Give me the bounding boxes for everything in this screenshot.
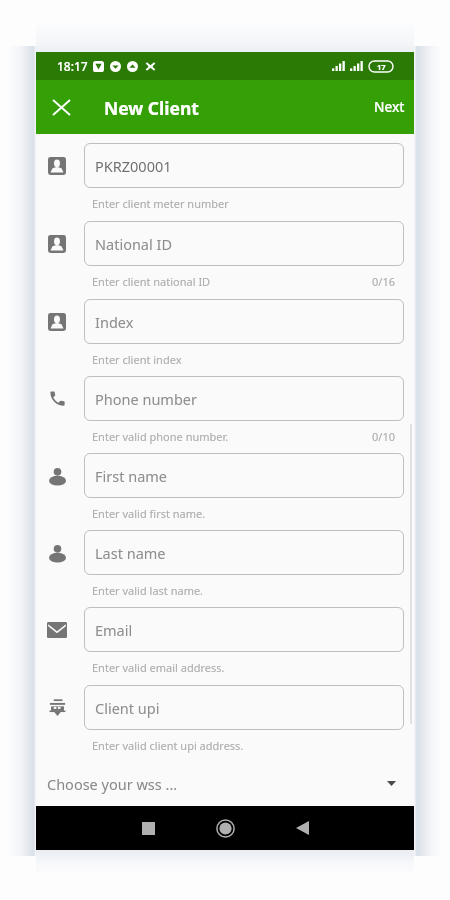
staticText: Enter client meter number (92, 196, 229, 211)
staticText: 17 (377, 62, 386, 72)
staticText: Enter valid phone number. (92, 429, 229, 444)
button[interactable]: Close (42, 88, 80, 126)
staticText: 0/16 (372, 274, 395, 289)
button[interactable]: Home (205, 808, 245, 848)
staticText: Enter client national ID (92, 274, 211, 289)
staticText: New Client (104, 96, 199, 120)
staticText: 18:17 (57, 58, 88, 74)
staticText: First name (95, 466, 168, 486)
staticText: Index (95, 312, 134, 332)
staticText: Enter valid client upi address. (92, 738, 244, 753)
staticText: Enter valid first name. (92, 506, 206, 521)
staticText: Choose your wss ... (47, 774, 178, 794)
staticText: PKRZ00001 (95, 156, 172, 176)
button[interactable]: Next (366, 90, 413, 124)
staticText: Enter valid last name. (92, 583, 204, 598)
staticText: Last name (95, 543, 166, 563)
staticText: Next (374, 98, 405, 116)
button[interactable]: Choose your wss ... (36, 769, 414, 798)
button[interactable]: Back (282, 808, 322, 848)
staticText: Enter valid email address. (92, 660, 225, 675)
staticText: National ID (95, 234, 173, 254)
staticText: Phone number (95, 389, 197, 409)
staticText: 0/10 (372, 429, 395, 444)
staticText: Enter client index (92, 352, 182, 367)
button[interactable]: Recents (128, 808, 168, 848)
staticText: Client upi (95, 698, 160, 718)
staticText: Email (95, 620, 133, 640)
